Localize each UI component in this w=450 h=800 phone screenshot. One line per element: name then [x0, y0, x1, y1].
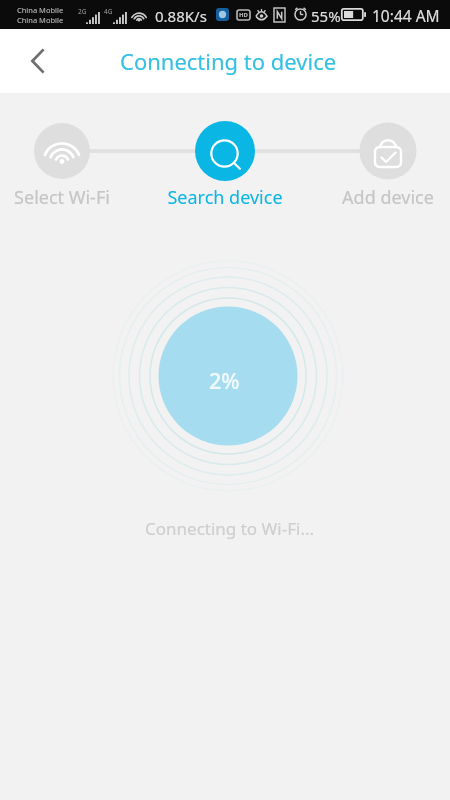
staticText: Add device [342, 185, 434, 210]
staticText: 0.88K/s [155, 6, 207, 26]
staticText: Connecting to device [120, 46, 337, 76]
button[interactable]: Back [10, 29, 66, 93]
staticText: China Mobile [17, 5, 64, 15]
staticText: Select Wi-Fi [14, 185, 110, 210]
button[interactable]: Select Wi-Fi [4, 120, 120, 208]
button[interactable]: Search device [167, 120, 283, 208]
staticText: 2G [78, 7, 87, 16]
staticText: Search device [167, 185, 283, 210]
staticText: 2% [209, 366, 240, 395]
staticText: 55% [311, 6, 341, 26]
staticText: Connecting to Wi-Fi... [145, 517, 315, 540]
staticText: 4G [104, 7, 113, 16]
staticText: China Mobile [17, 15, 64, 25]
button[interactable]: Add device [330, 120, 446, 208]
staticText: HD [239, 11, 248, 19]
staticText: 10:44 AM [372, 5, 440, 26]
